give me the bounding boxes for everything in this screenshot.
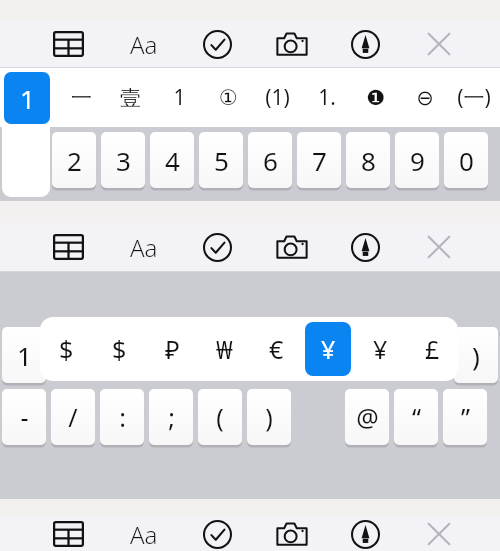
- staticText: -: [20, 400, 29, 434]
- staticText: ₩: [216, 332, 233, 366]
- staticText: ①: [219, 86, 238, 110]
- button[interactable]: ): [454, 327, 498, 383]
- button[interactable]: Insert table: [48, 227, 88, 267]
- button[interactable]: 9: [395, 132, 439, 188]
- button[interactable]: 3: [101, 132, 145, 188]
- button[interactable]: $: [93, 317, 146, 381]
- staticText: ❶: [366, 86, 385, 110]
- button[interactable]: Text formatting: [123, 517, 165, 551]
- staticText: 5: [214, 143, 229, 178]
- button[interactable]: Close keyboard: [419, 24, 459, 64]
- button[interactable]: Checklist: [197, 24, 237, 64]
- button[interactable]: ⊖: [400, 68, 449, 127]
- staticText: (1): [265, 83, 290, 112]
- button[interactable]: ”: [443, 389, 487, 445]
- staticText: ): [472, 338, 480, 373]
- button[interactable]: ): [247, 389, 291, 445]
- button[interactable]: ₽: [146, 317, 198, 381]
- button[interactable]: 1: [2, 327, 46, 383]
- staticText: 0: [459, 143, 474, 178]
- staticText: ¥: [321, 332, 336, 366]
- button[interactable]: 4: [150, 132, 194, 188]
- button[interactable]: @: [345, 389, 389, 445]
- staticText: 7: [312, 143, 327, 178]
- staticText: ⊖: [416, 86, 434, 110]
- button[interactable]: :: [100, 389, 144, 445]
- staticText: 9: [410, 143, 425, 178]
- button[interactable]: 1: [4, 72, 50, 124]
- button[interactable]: 1: [155, 68, 204, 127]
- button[interactable]: 一: [56, 68, 106, 127]
- button[interactable]: Close keyboard: [419, 517, 459, 551]
- button[interactable]: 0: [444, 132, 488, 188]
- staticText: 8: [361, 143, 376, 178]
- button[interactable]: (一): [449, 68, 498, 127]
- staticText: Aa: [130, 518, 158, 551]
- button[interactable]: ;: [149, 389, 193, 445]
- button[interactable]: Checklist: [197, 227, 237, 267]
- button[interactable]: Camera: [271, 226, 313, 268]
- staticText: ₽: [165, 332, 180, 366]
- staticText: “: [412, 400, 421, 434]
- button[interactable]: (1): [253, 68, 302, 127]
- staticText: 1.: [318, 83, 336, 112]
- button[interactable]: Markup: [345, 227, 385, 267]
- button[interactable]: 7: [297, 132, 341, 188]
- button[interactable]: ¥: [305, 322, 351, 376]
- staticText: $: [59, 332, 74, 366]
- button[interactable]: “: [394, 389, 438, 445]
- button[interactable]: -: [2, 389, 46, 445]
- staticText: Aa: [130, 231, 158, 264]
- button[interactable]: ❶: [351, 68, 400, 127]
- staticText: (一): [457, 83, 491, 112]
- button[interactable]: Text formatting: [123, 23, 165, 65]
- staticText: Aa: [130, 28, 158, 61]
- button[interactable]: Close keyboard: [419, 227, 459, 267]
- button[interactable]: Insert table: [48, 517, 88, 551]
- staticText: :: [119, 400, 126, 434]
- staticText: ”: [461, 400, 470, 434]
- staticText: 4: [165, 143, 180, 178]
- staticText: ): [265, 400, 273, 434]
- staticText: $: [112, 332, 127, 366]
- button[interactable]: Camera: [271, 23, 313, 65]
- button[interactable]: Checklist: [197, 517, 237, 551]
- button[interactable]: 2: [52, 132, 96, 188]
- staticText: 壹: [120, 85, 141, 111]
- button[interactable]: (: [198, 389, 242, 445]
- staticText: ¥: [373, 332, 388, 366]
- staticText: /: [68, 400, 78, 434]
- button[interactable]: Insert table: [48, 24, 88, 64]
- button[interactable]: Markup: [345, 24, 385, 64]
- button[interactable]: 1.: [302, 68, 351, 127]
- staticText: 6: [263, 143, 278, 178]
- staticText: 1: [17, 338, 32, 373]
- button[interactable]: 壹: [106, 68, 155, 127]
- staticText: ;: [168, 400, 175, 434]
- staticText: @: [356, 400, 379, 434]
- button[interactable]: 6: [248, 132, 292, 188]
- button[interactable]: Key 1 pressed: [2, 127, 50, 197]
- staticText: 2: [67, 143, 82, 178]
- button[interactable]: 8: [346, 132, 390, 188]
- staticText: €: [269, 332, 284, 366]
- staticText: 3: [116, 143, 131, 178]
- button[interactable]: ¥: [354, 317, 406, 381]
- button[interactable]: €: [250, 317, 302, 381]
- button[interactable]: Text formatting: [123, 226, 165, 268]
- button[interactable]: $: [40, 317, 93, 381]
- button[interactable]: ₩: [198, 317, 250, 381]
- staticText: 1: [173, 83, 186, 112]
- staticText: £: [425, 332, 440, 366]
- button[interactable]: Markup: [345, 517, 385, 551]
- button[interactable]: ①: [204, 68, 253, 127]
- staticText: 一: [71, 85, 92, 111]
- staticText: (: [216, 400, 224, 434]
- staticText: 1: [20, 81, 35, 116]
- button[interactable]: 5: [199, 132, 243, 188]
- button[interactable]: £: [406, 317, 458, 381]
- button[interactable]: /: [51, 389, 95, 445]
- button[interactable]: Camera: [271, 517, 313, 551]
